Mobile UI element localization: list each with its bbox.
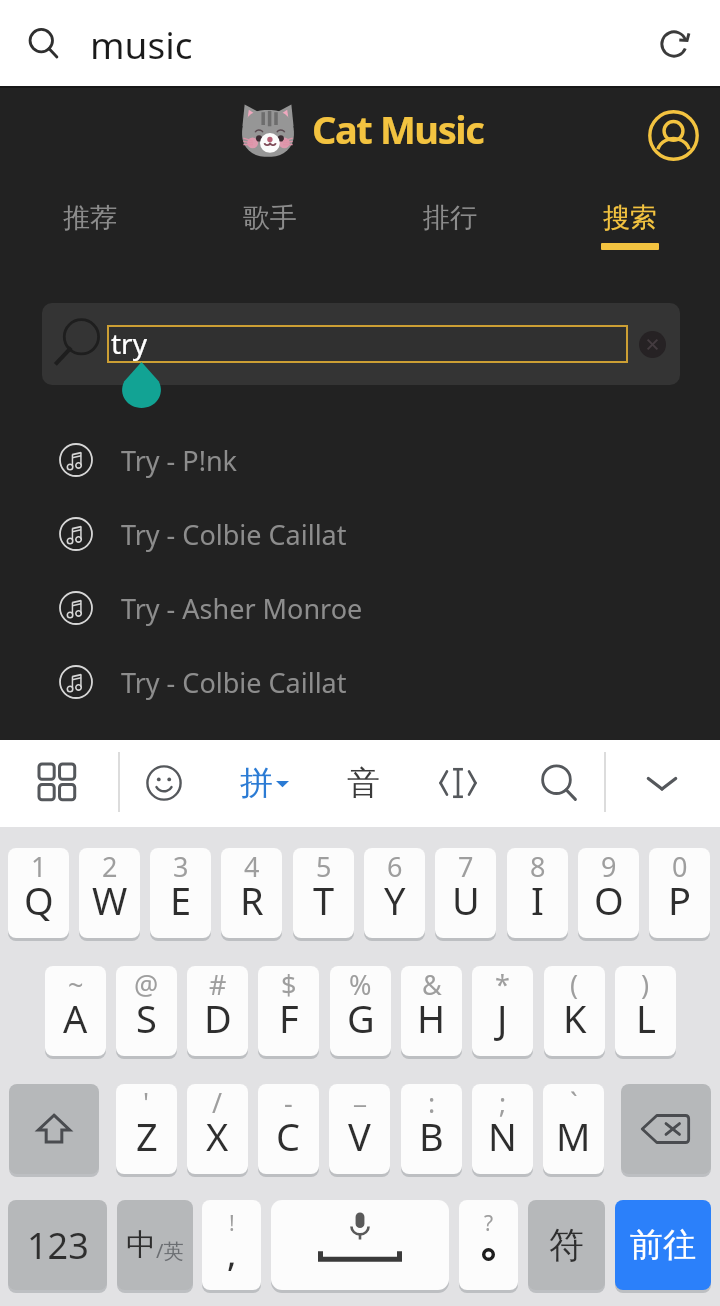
button[interactable]: 0 <box>649 848 710 938</box>
button[interactable]: _ <box>329 1084 390 1174</box>
staticText: ' <box>143 1084 150 1121</box>
staticText: 音 <box>347 762 380 804</box>
button[interactable]: 5 <box>293 848 354 938</box>
staticText: ! <box>229 1209 235 1238</box>
staticText: & <box>422 966 442 1003</box>
staticText: ) <box>641 966 650 1003</box>
button[interactable]: 1 <box>8 848 69 938</box>
button[interactable]: 123 <box>8 1200 107 1290</box>
button[interactable]: 歌手 <box>180 178 360 258</box>
button[interactable]: Search <box>14 14 74 74</box>
staticText: /英 <box>156 1237 184 1264</box>
button[interactable]: 3 <box>150 848 211 938</box>
button[interactable]: 8 <box>507 848 568 938</box>
button[interactable]: try <box>107 325 628 363</box>
button[interactable]: & <box>401 966 462 1056</box>
staticText: P <box>668 874 691 926</box>
staticText: 9 <box>601 848 617 885</box>
button[interactable]: Search music <box>48 313 106 371</box>
button[interactable]: 6 <box>364 848 425 938</box>
button[interactable]: Try - Colbie Caillat <box>0 497 720 571</box>
button[interactable]: % <box>330 966 391 1056</box>
button[interactable]: 音 <box>340 755 386 811</box>
button[interactable]: 4 <box>221 848 282 938</box>
button[interactable]: ~ <box>45 966 106 1056</box>
button[interactable]: 中 <box>117 1200 193 1290</box>
button[interactable]: * <box>472 966 533 1056</box>
button[interactable]: ) <box>615 966 676 1056</box>
staticText: ( <box>570 966 579 1003</box>
button[interactable]: 7 <box>435 848 496 938</box>
button[interactable]: @ <box>116 966 177 1056</box>
staticText: , <box>227 1231 237 1277</box>
staticText: * <box>495 966 510 1003</box>
button[interactable]: 拼 <box>240 755 289 811</box>
button[interactable]: Refresh <box>644 14 704 74</box>
button[interactable]: Search <box>531 755 587 811</box>
button[interactable]: / <box>187 1084 248 1174</box>
button[interactable]: 前往 <box>615 1200 711 1290</box>
button[interactable]: Try - P!nk <box>0 423 720 497</box>
staticText: M <box>556 1110 591 1162</box>
button[interactable]: 9 <box>578 848 639 938</box>
button[interactable] <box>621 1084 711 1174</box>
button[interactable]: ! <box>202 1200 261 1290</box>
staticText: / <box>212 1084 223 1121</box>
staticText: % <box>349 966 372 1003</box>
button[interactable]: # <box>187 966 248 1056</box>
staticText: - <box>284 1084 293 1121</box>
staticText: 5 <box>316 848 332 885</box>
staticText: ` <box>570 1084 578 1121</box>
staticText: V <box>348 1110 371 1162</box>
button[interactable] <box>271 1200 449 1290</box>
staticText: 7 <box>458 848 474 885</box>
staticText: 拼 <box>240 762 273 804</box>
button[interactable]: Hide keyboard <box>634 755 690 811</box>
staticText: U <box>452 874 480 926</box>
staticText: I <box>531 874 544 926</box>
staticText: Cat Music <box>312 103 484 155</box>
staticText: 排行 <box>423 201 477 235</box>
staticText: 6 <box>387 848 403 885</box>
staticText: L <box>636 992 656 1044</box>
staticText: B <box>419 1110 444 1162</box>
button[interactable]: : <box>401 1084 462 1174</box>
staticText: T <box>313 874 335 926</box>
staticText: 1 <box>31 848 47 885</box>
button[interactable] <box>9 1084 99 1174</box>
staticText: H <box>417 992 446 1044</box>
button[interactable]: - <box>258 1084 319 1174</box>
button[interactable]: Clear text <box>634 326 670 362</box>
button[interactable]: ( <box>544 966 605 1056</box>
button[interactable]: 符 <box>528 1200 605 1290</box>
staticText: 歌手 <box>243 201 297 235</box>
button[interactable]: 2 <box>79 848 140 938</box>
staticText: C <box>276 1110 301 1162</box>
button[interactable]: Keyboard layouts <box>30 755 86 811</box>
button[interactable]: Try - Asher Monroe <box>0 571 720 645</box>
button[interactable]: Edit text cursor <box>430 755 486 811</box>
button[interactable]: 推荐 <box>0 178 180 258</box>
button[interactable]: 排行 <box>360 178 540 258</box>
staticText: 0 <box>672 848 688 885</box>
staticText: try <box>111 324 147 362</box>
staticText: F <box>279 992 299 1044</box>
button[interactable]: ' <box>116 1084 177 1174</box>
button[interactable]: Try - Colbie Caillat <box>0 645 720 719</box>
button[interactable]: $ <box>258 966 319 1056</box>
button[interactable]: ; <box>472 1084 533 1174</box>
staticText: ~ <box>68 966 84 1003</box>
button[interactable]: ` <box>543 1084 604 1174</box>
staticText: 搜索 <box>603 201 657 235</box>
staticText: 推荐 <box>63 201 117 235</box>
staticText: # <box>209 966 227 1003</box>
button[interactable]: ? <box>459 1200 518 1290</box>
button[interactable]: Profile <box>643 105 703 165</box>
button[interactable]: 搜索 <box>540 178 720 258</box>
staticText: @ <box>134 966 159 1003</box>
staticText: S <box>136 992 157 1044</box>
staticText: 8 <box>530 848 546 885</box>
staticText: K <box>563 992 587 1044</box>
staticText: _ <box>354 1084 366 1111</box>
button[interactable]: Emoji <box>136 755 192 811</box>
